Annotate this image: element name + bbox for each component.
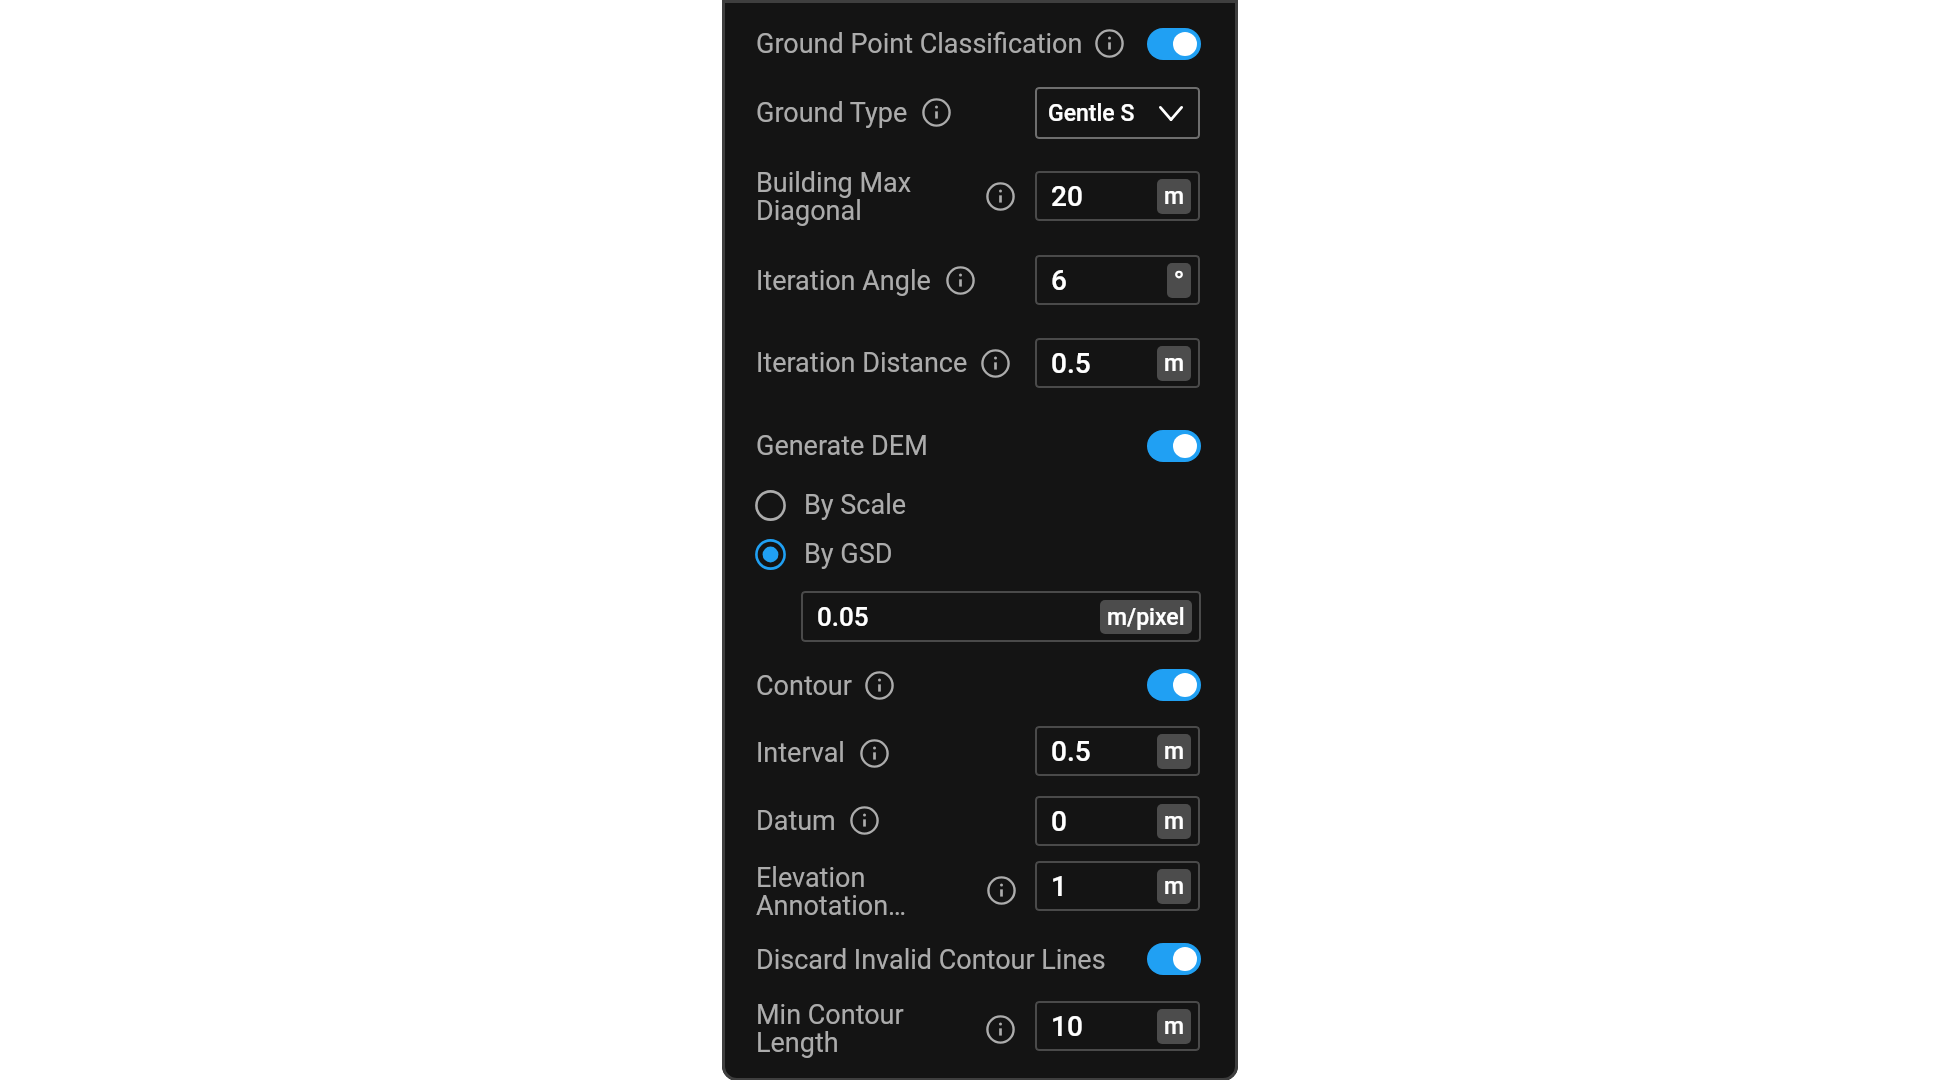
button[interactable]: Generate DEM (1147, 430, 1201, 462)
button[interactable]: 0 (1035, 796, 1200, 846)
button[interactable]: Elevation Annotation… (756, 852, 976, 932)
staticText: Ground Type (756, 97, 908, 129)
button[interactable]: More information (865, 671, 894, 700)
button[interactable]: Building Max Diagonal (756, 157, 976, 237)
button[interactable]: Discard Invalid Contour Lines (756, 920, 1116, 1000)
staticText: Iteration Angle (756, 265, 931, 297)
staticText: Ground Point Classification (756, 28, 1083, 60)
staticText: m (1164, 873, 1185, 900)
staticText: 20 (1051, 180, 1083, 213)
button[interactable]: Ground Type (756, 73, 1016, 153)
button[interactable]: Min Contour Length (756, 989, 976, 1069)
staticText: Discard Invalid Contour Lines (756, 944, 1106, 976)
button[interactable]: By Scale (755, 485, 975, 525)
button[interactable]: Ground Point Classification (756, 4, 1086, 84)
button[interactable]: Contour (756, 646, 1016, 726)
staticText: 0 (1051, 805, 1067, 838)
button[interactable]: More information (986, 182, 1015, 211)
staticText: 6 (1051, 264, 1067, 297)
staticText: Elevation Annotation… (756, 862, 907, 922)
button[interactable]: More information (922, 98, 951, 127)
button[interactable]: Interval (756, 713, 1016, 793)
button[interactable]: Generate DEM (756, 406, 1016, 486)
staticText: 1 (1051, 870, 1067, 903)
button[interactable]: 20 (1035, 171, 1200, 221)
staticText: Iteration Distance (756, 347, 968, 379)
staticText: 0.05 (817, 602, 869, 632)
button[interactable]: Iteration Distance (756, 323, 1016, 403)
staticText: m (1164, 808, 1185, 835)
button[interactable]: More information (981, 349, 1010, 378)
staticText: m/pixel (1107, 604, 1185, 631)
button[interactable]: More information (850, 806, 879, 835)
staticText: By Scale (804, 489, 907, 521)
button[interactable]: Gentle S (1035, 87, 1200, 139)
button[interactable]: More information (986, 1015, 1015, 1044)
staticText: m (1164, 1013, 1185, 1040)
button[interactable]: 6 (1035, 255, 1200, 305)
staticText: Gentle S (1048, 100, 1135, 127)
button[interactable]: Datum (756, 781, 1016, 861)
staticText: m (1164, 350, 1185, 377)
staticText: Building Max Diagonal (756, 167, 912, 227)
button[interactable]: 1 (1035, 861, 1200, 911)
button[interactable]: Iteration Angle (756, 241, 1016, 321)
button[interactable]: 0.05 (801, 591, 1201, 642)
staticText: Min Contour Length (756, 999, 904, 1059)
button[interactable]: By GSD (755, 534, 975, 574)
button[interactable]: 0.5 (1035, 338, 1200, 388)
button[interactable]: More information (987, 876, 1016, 905)
staticText: 0.5 (1051, 735, 1091, 768)
staticText: m (1164, 183, 1185, 210)
button[interactable]: 0.5 (1035, 726, 1200, 776)
staticText: 10 (1051, 1010, 1083, 1043)
button[interactable]: More information (860, 739, 889, 768)
staticText: Generate DEM (756, 430, 928, 462)
staticText: Datum (756, 805, 836, 837)
staticText: Interval (756, 737, 845, 769)
staticText: m (1164, 738, 1185, 765)
button[interactable]: Contour (1147, 669, 1201, 701)
button[interactable]: 10 (1035, 1001, 1200, 1051)
staticText: Contour (756, 670, 852, 702)
button[interactable]: Ground Point Classification (1147, 28, 1201, 60)
button[interactable]: More information (946, 266, 975, 295)
button[interactable]: More information (1095, 29, 1124, 58)
staticText: 0.5 (1051, 347, 1091, 380)
button[interactable]: Discard Invalid Contour Lines (1147, 943, 1201, 975)
staticText: By GSD (804, 538, 893, 570)
